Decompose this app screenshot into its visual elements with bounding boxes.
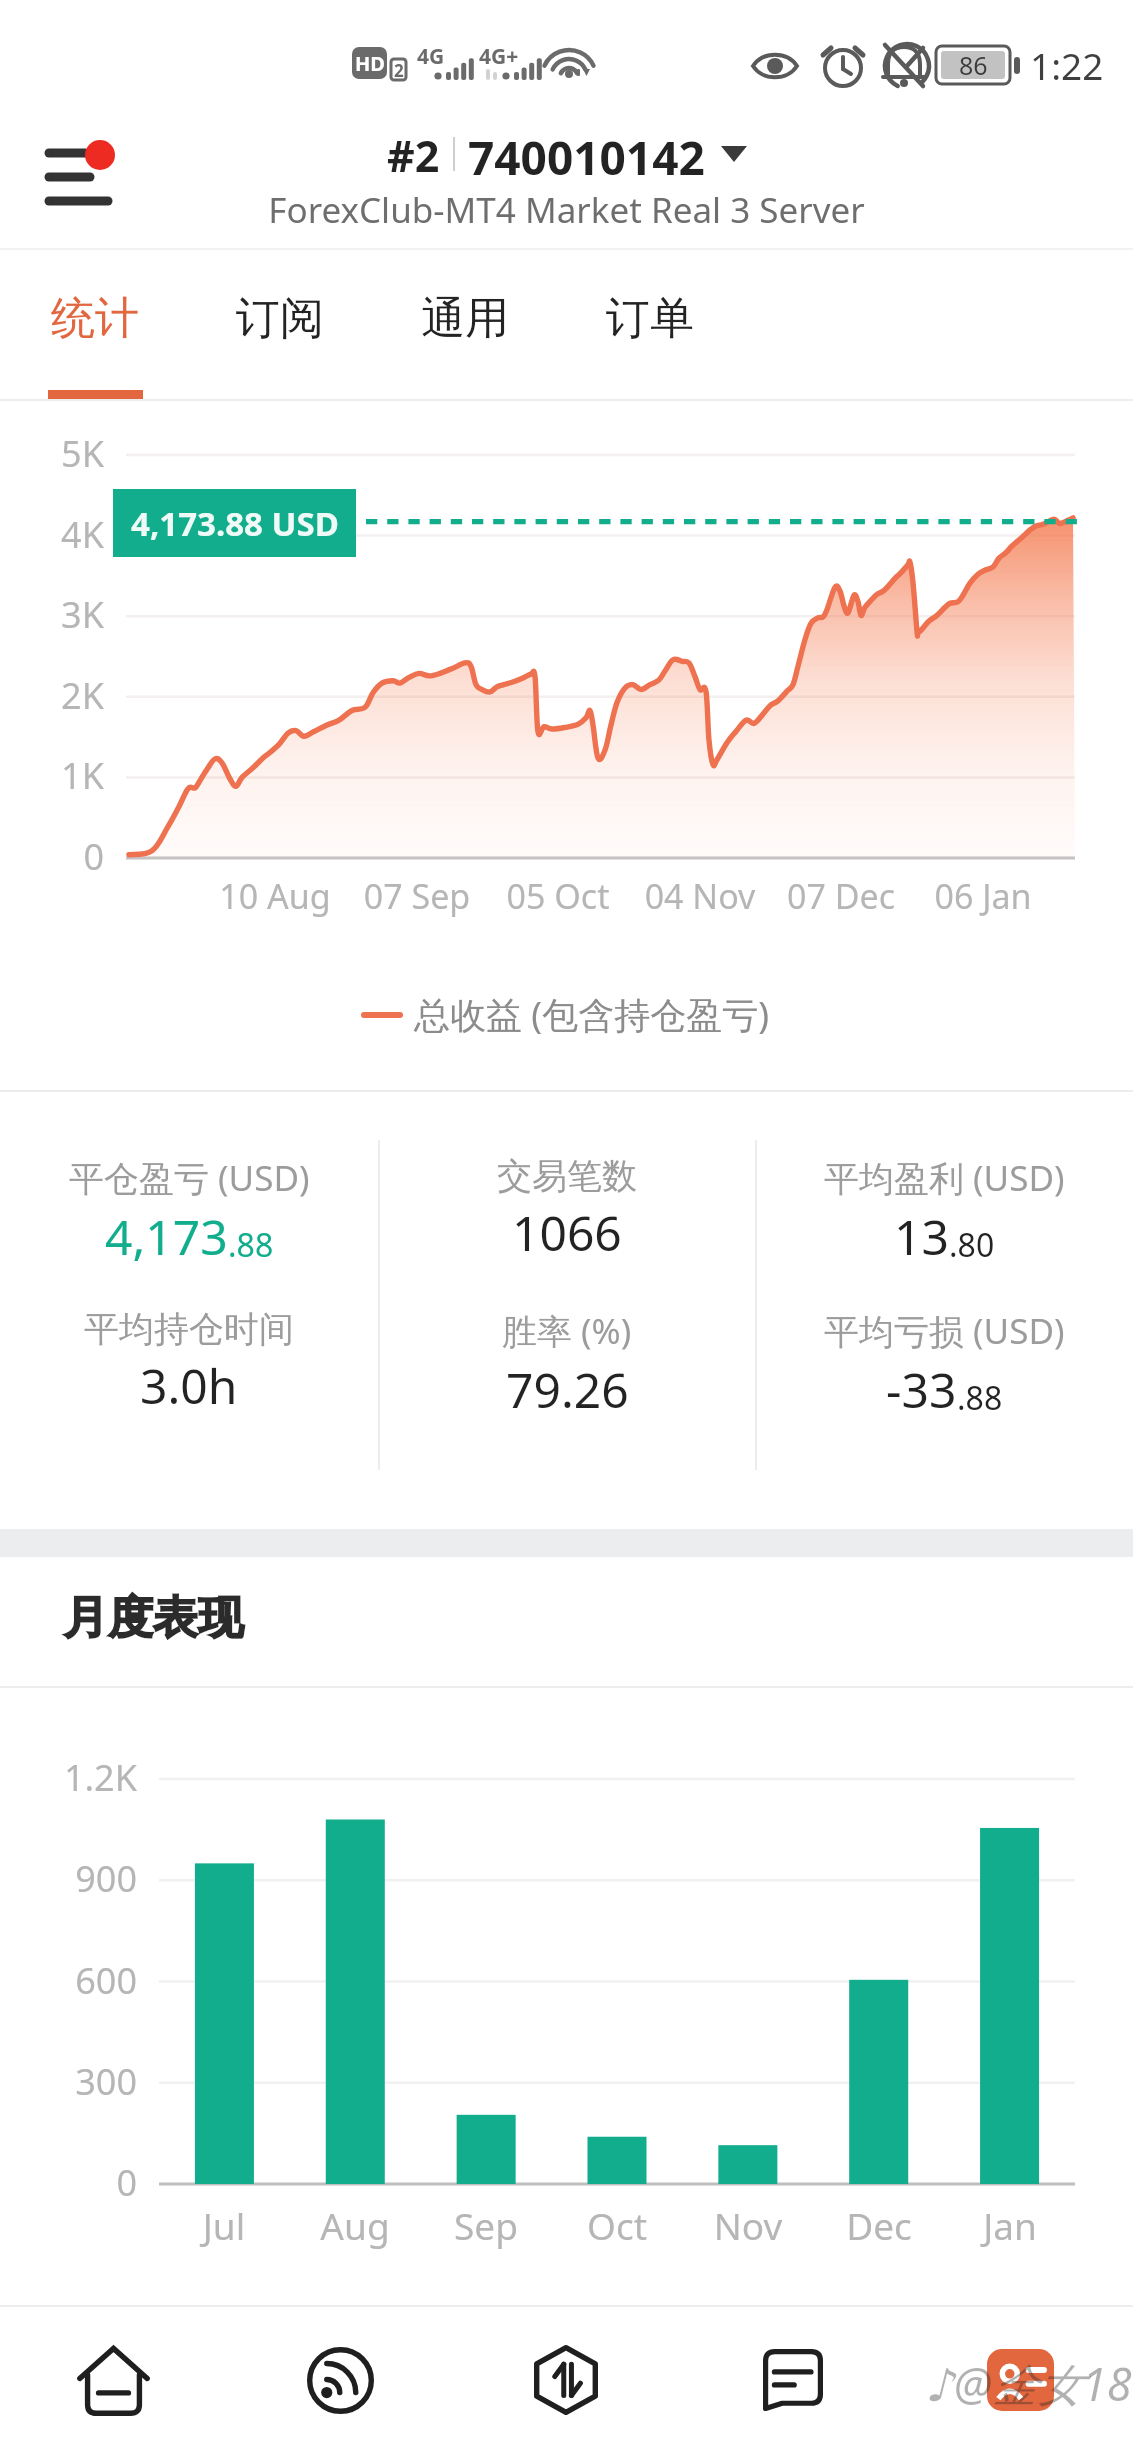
staticText: 900 xyxy=(0,1854,137,1903)
button[interactable]: Profile xyxy=(950,2309,1090,2451)
staticText: 1:22 xyxy=(1030,40,1104,90)
staticText: 86 xyxy=(959,48,988,82)
staticText: ForexClub-MT4 Market Real 3 Server xyxy=(0,186,1133,234)
button[interactable]: Trade xyxy=(496,2309,636,2451)
staticText: 胜率 (%) xyxy=(502,1307,632,1355)
button[interactable]: 订单 xyxy=(602,250,698,400)
button[interactable]: Menu xyxy=(34,136,126,228)
staticText: 统计 xyxy=(51,291,139,346)
staticText: 600 xyxy=(0,1956,137,2005)
staticText: Dec xyxy=(799,2200,959,2250)
staticText: 5K xyxy=(0,429,104,478)
button[interactable]: 通用 xyxy=(417,250,513,400)
staticText: Jan xyxy=(930,2200,1090,2250)
staticText: 300 xyxy=(0,2057,137,2106)
staticText: HD xyxy=(355,50,385,77)
staticText: 4G+ xyxy=(479,42,519,71)
staticText: 05 Oct xyxy=(468,873,648,919)
staticText: 4G xyxy=(417,42,445,71)
staticText: #2 xyxy=(387,126,440,182)
staticText: Jul xyxy=(144,2200,304,2250)
staticText: Oct xyxy=(537,2200,697,2250)
staticText: 月度表现 xyxy=(63,1590,243,1647)
staticText: 2 xyxy=(394,59,404,80)
staticText: 平均亏损 (USD) xyxy=(824,1307,1065,1355)
button[interactable]: 统计 xyxy=(47,250,143,400)
staticText: 订阅 xyxy=(236,291,324,346)
staticText: 07 Dec xyxy=(751,873,931,919)
staticText: 4K xyxy=(0,510,104,559)
staticText: 订单 xyxy=(606,291,694,346)
staticText: 79.26 xyxy=(506,1357,629,1422)
button[interactable]: Home xyxy=(43,2309,183,2451)
staticText: 06 Jan xyxy=(893,873,1073,919)
staticText: Aug xyxy=(275,2200,435,2250)
staticText: 总收益 (包含持仓盈亏) xyxy=(414,990,769,1039)
staticText: 4,173 xyxy=(105,1204,228,1269)
staticText: .80 xyxy=(949,1223,995,1267)
staticText: Nov xyxy=(668,2200,828,2250)
staticText: 07 Sep xyxy=(327,873,507,919)
staticText: 0 xyxy=(0,2158,137,2207)
staticText: Sep xyxy=(406,2200,566,2250)
staticText: 1.2K xyxy=(0,1753,137,1802)
staticText: 3.0h xyxy=(140,1353,238,1418)
staticText: .88 xyxy=(957,1376,1003,1420)
button[interactable]: 订阅 xyxy=(232,250,328,400)
staticText: 04 Nov xyxy=(610,873,790,919)
staticText: 通用 xyxy=(421,291,509,346)
staticText: ♪@金女18 xyxy=(925,2353,1132,2414)
staticText: 13 xyxy=(894,1204,949,1269)
button[interactable]: Messages xyxy=(723,2309,863,2451)
staticText: 交易笔数 xyxy=(497,1154,637,1198)
button[interactable]: #2 xyxy=(0,126,1133,182)
staticText: 平仓盈亏 (USD) xyxy=(69,1154,310,1202)
staticText: 740010142 xyxy=(468,126,705,182)
staticText: 1K xyxy=(0,751,104,800)
button[interactable]: Signals xyxy=(270,2309,410,2451)
staticText: 4,173.88 USD xyxy=(131,501,339,546)
staticText: 3K xyxy=(0,590,104,639)
staticText: 0 xyxy=(0,832,104,881)
staticText: 10 Aug xyxy=(185,873,365,919)
staticText: 2K xyxy=(0,671,104,720)
staticText: 平均盈利 (USD) xyxy=(824,1154,1065,1202)
staticText: .88 xyxy=(228,1223,274,1267)
staticText: 1066 xyxy=(512,1200,622,1265)
staticText: -33 xyxy=(886,1357,957,1422)
staticText: 平均持仓时间 xyxy=(84,1307,294,1351)
